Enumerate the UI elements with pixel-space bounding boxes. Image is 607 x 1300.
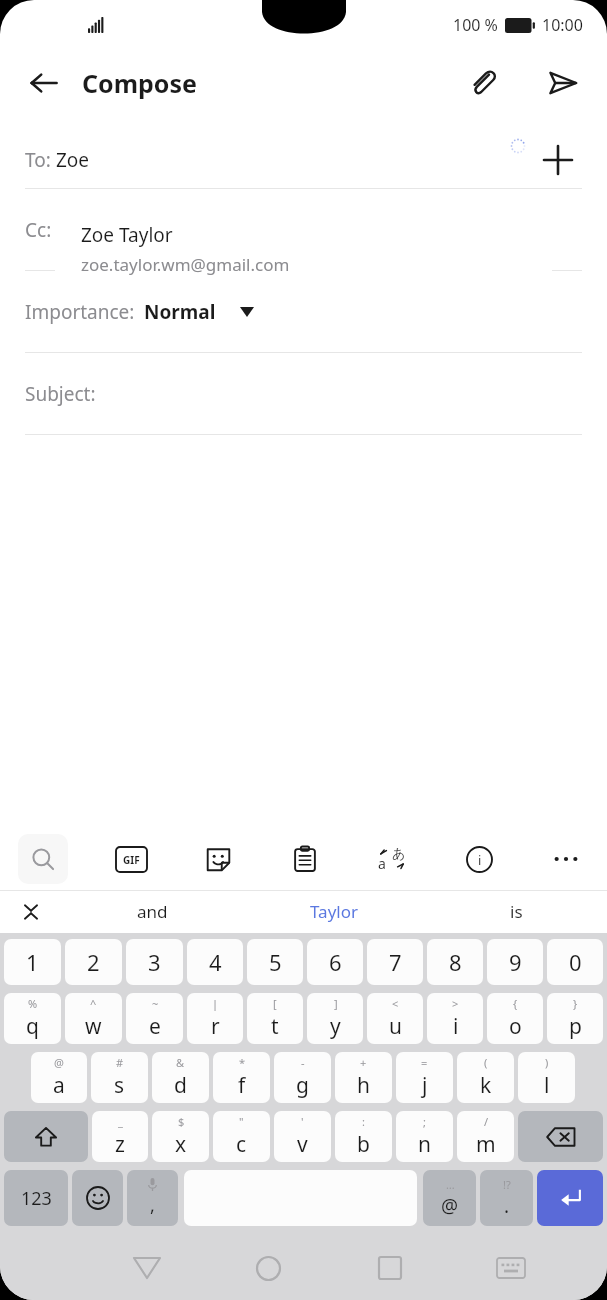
button[interactable]: !? bbox=[480, 1170, 533, 1226]
button[interactable]: Home bbox=[208, 1236, 329, 1300]
staticText: p bbox=[569, 1012, 582, 1041]
button[interactable]: and bbox=[62, 890, 243, 933]
button[interactable]: 1 bbox=[4, 939, 61, 985]
button[interactable]: 4 bbox=[187, 939, 243, 985]
button[interactable]: More bbox=[543, 836, 589, 882]
button[interactable]: $ bbox=[152, 1111, 209, 1162]
staticText: w bbox=[85, 1012, 102, 1041]
staticText: ] bbox=[334, 996, 338, 1011]
button[interactable]: - bbox=[274, 1052, 331, 1103]
staticText: [ bbox=[273, 996, 277, 1011]
button[interactable]: … bbox=[423, 1170, 476, 1226]
button[interactable]: 8 bbox=[427, 939, 483, 985]
button[interactable]: Numbers bbox=[4, 1170, 68, 1226]
button[interactable]: _ bbox=[92, 1111, 148, 1162]
button[interactable]: Backspace bbox=[518, 1111, 603, 1162]
button[interactable]: Back bbox=[20, 59, 68, 107]
button[interactable]: Back bbox=[86, 1236, 208, 1300]
button[interactable]: = bbox=[396, 1052, 453, 1103]
staticText: zoe.taylor.wm@gmail.com bbox=[81, 253, 290, 276]
button[interactable]: ; bbox=[396, 1111, 453, 1162]
button[interactable]: 2 bbox=[65, 939, 122, 985]
staticText: $ bbox=[178, 1114, 185, 1129]
button[interactable]: Clipboard bbox=[282, 836, 328, 882]
button[interactable]: Add recipient bbox=[534, 136, 582, 184]
staticText: 1 bbox=[26, 947, 39, 977]
staticText: Subject: bbox=[25, 381, 96, 407]
button[interactable]: Recents bbox=[329, 1236, 450, 1300]
button[interactable]: Voice input, comma bbox=[127, 1170, 178, 1226]
button[interactable]: Info bbox=[456, 836, 502, 882]
button[interactable]: } bbox=[547, 993, 603, 1044]
button[interactable]: Importance: bbox=[25, 271, 582, 352]
button[interactable]: 6 bbox=[307, 939, 363, 985]
button[interactable]: ) bbox=[518, 1052, 575, 1103]
button[interactable]: 7 bbox=[367, 939, 423, 985]
staticText: v bbox=[297, 1130, 308, 1159]
staticText: 10:00 bbox=[542, 14, 583, 36]
button[interactable]: / bbox=[457, 1111, 514, 1162]
button[interactable]: * bbox=[213, 1052, 270, 1103]
button[interactable]: Attach bbox=[459, 59, 507, 107]
button[interactable]: + bbox=[335, 1052, 392, 1103]
button[interactable]: 5 bbox=[247, 939, 303, 985]
button[interactable]: Translate bbox=[369, 836, 415, 882]
staticText: < bbox=[392, 996, 399, 1011]
staticText: 4 bbox=[209, 947, 222, 977]
button[interactable]: Enter bbox=[537, 1170, 603, 1226]
button[interactable]: is bbox=[425, 890, 607, 933]
button[interactable]: ( bbox=[457, 1052, 514, 1103]
button[interactable]: 0 bbox=[547, 939, 603, 985]
button[interactable]: GIF bbox=[108, 836, 154, 882]
button[interactable]: < bbox=[367, 993, 423, 1044]
button[interactable]: @ bbox=[31, 1052, 87, 1103]
staticText: / bbox=[484, 1114, 489, 1129]
button[interactable]: " bbox=[213, 1111, 270, 1162]
button[interactable]: % bbox=[4, 993, 61, 1044]
staticText: To: bbox=[25, 147, 56, 173]
button[interactable]: ~ bbox=[126, 993, 183, 1044]
button[interactable]: > bbox=[427, 993, 483, 1044]
button[interactable]: Search bbox=[18, 834, 68, 884]
button[interactable]: Emoji bbox=[72, 1170, 123, 1226]
button[interactable]: Collapse suggestions bbox=[0, 890, 62, 933]
button[interactable]: Shift bbox=[4, 1111, 88, 1162]
staticText: 3 bbox=[148, 947, 161, 977]
staticText: _ bbox=[118, 1114, 123, 1129]
staticText: d bbox=[174, 1071, 187, 1100]
button[interactable]: | bbox=[187, 993, 243, 1044]
staticText: 0 bbox=[569, 947, 582, 977]
staticText: # bbox=[116, 1055, 124, 1070]
button[interactable]: & bbox=[152, 1052, 209, 1103]
button[interactable]: : bbox=[335, 1111, 392, 1162]
staticText: !? bbox=[503, 1177, 511, 1192]
staticText: 9 bbox=[509, 947, 522, 977]
button[interactable]: { bbox=[487, 993, 543, 1044]
button[interactable]: 3 bbox=[126, 939, 183, 985]
button[interactable]: Send bbox=[539, 59, 587, 107]
button[interactable]: # bbox=[91, 1052, 148, 1103]
button[interactable]: Hide keyboard bbox=[450, 1236, 571, 1300]
button[interactable]: Zoe Taylor bbox=[55, 208, 552, 296]
staticText: " bbox=[239, 1114, 244, 1129]
staticText: & bbox=[176, 1055, 185, 1070]
staticText: ~ bbox=[152, 996, 159, 1011]
button[interactable]: Stickers bbox=[195, 836, 241, 882]
button[interactable]: [ bbox=[247, 993, 303, 1044]
button[interactable]: ] bbox=[307, 993, 363, 1044]
button[interactable]: 9 bbox=[487, 939, 543, 985]
staticText: 123 bbox=[21, 1186, 52, 1211]
staticText: n bbox=[418, 1130, 431, 1159]
button[interactable]: ' bbox=[274, 1111, 331, 1162]
staticText: i bbox=[478, 851, 482, 869]
staticText: i bbox=[453, 1012, 459, 1041]
staticText: l bbox=[544, 1071, 550, 1100]
button[interactable]: ^ bbox=[65, 993, 122, 1044]
staticText: , bbox=[150, 1193, 155, 1218]
button[interactable]: Taylor bbox=[243, 890, 425, 933]
staticText: 100 % bbox=[453, 14, 498, 36]
staticText: 6 bbox=[329, 947, 342, 977]
staticText: . bbox=[504, 1193, 510, 1219]
staticText: f bbox=[238, 1071, 246, 1100]
